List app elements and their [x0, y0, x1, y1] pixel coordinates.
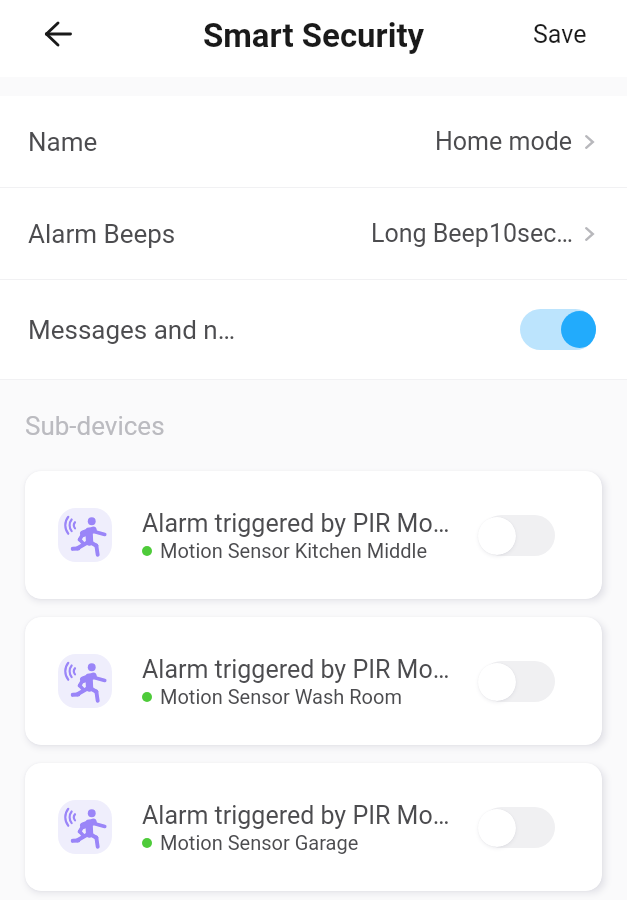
button[interactable]: Save	[525, 12, 595, 57]
button[interactable]: Alarm triggered by PIR Mo…	[25, 763, 602, 891]
staticText: Alarm triggered by PIR Mo…	[142, 655, 450, 684]
button[interactable]: Alarm triggered by PIR Mo…	[25, 617, 602, 745]
button[interactable]: Messages and n…	[0, 280, 627, 379]
staticText: Messages and n…	[28, 315, 236, 345]
staticText: Home mode	[435, 127, 573, 156]
staticText: Alarm triggered by PIR Mo…	[142, 801, 450, 830]
button[interactable]: Device toggle	[481, 515, 555, 556]
button[interactable]: Messages and notifications toggle	[520, 309, 596, 350]
staticText: Name	[28, 127, 98, 157]
staticText: Smart Security	[203, 16, 425, 55]
staticText: Motion Sensor Garage	[160, 831, 359, 854]
staticText: Alarm Beeps	[28, 219, 176, 249]
button[interactable]: Back	[34, 10, 82, 58]
button[interactable]: Alarm triggered by PIR Mo…	[25, 471, 602, 599]
staticText: Long Beep10sec…	[371, 219, 573, 248]
button[interactable]: Device toggle	[481, 661, 555, 702]
staticText: Sub-devices	[25, 411, 165, 441]
staticText: Save	[533, 20, 587, 49]
staticText: Alarm triggered by PIR Mo…	[142, 509, 450, 538]
button[interactable]: Name	[0, 96, 627, 187]
staticText: Motion Sensor Wash Room	[160, 685, 402, 708]
button[interactable]: Device toggle	[481, 807, 555, 848]
button[interactable]: Alarm Beeps	[0, 188, 627, 279]
staticText: Motion Sensor Kitchen Middle	[160, 539, 428, 562]
